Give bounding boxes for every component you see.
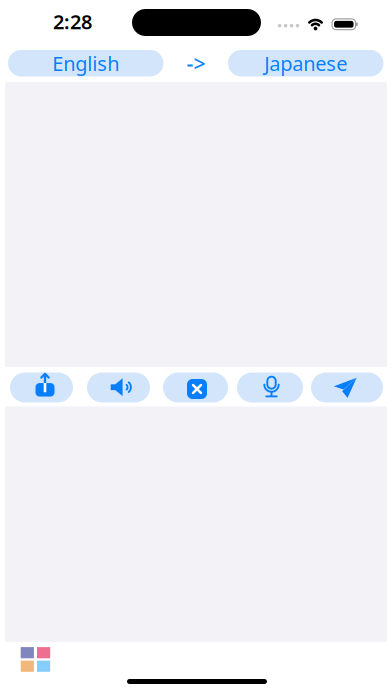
button[interactable] bbox=[311, 372, 383, 402]
button[interactable] bbox=[20, 647, 50, 672]
staticText: 2:28 bbox=[53, 8, 92, 35]
button[interactable] bbox=[10, 372, 73, 402]
button[interactable] bbox=[87, 372, 150, 402]
staticText: English bbox=[52, 50, 119, 76]
button[interactable] bbox=[163, 372, 228, 402]
button[interactable]: Japanese bbox=[228, 50, 383, 76]
button[interactable]: English bbox=[8, 50, 163, 76]
staticText: Japanese bbox=[264, 50, 347, 76]
staticText: -> bbox=[186, 49, 205, 77]
button[interactable] bbox=[237, 372, 303, 402]
